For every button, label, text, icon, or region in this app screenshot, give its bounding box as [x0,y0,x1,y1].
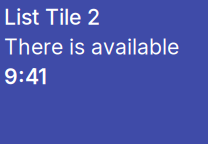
staticText: List Tile 2 [4,4,100,30]
staticText: There is available [4,34,179,60]
staticText: 9:41 [4,64,47,89]
